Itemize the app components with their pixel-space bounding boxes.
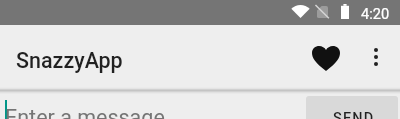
staticText: SEND bbox=[333, 110, 375, 119]
staticText: 4:20 bbox=[361, 5, 390, 22]
button[interactable]: Favorite bbox=[302, 36, 350, 80]
button[interactable]: SEND bbox=[306, 96, 398, 119]
staticText: SnazzyApp bbox=[16, 48, 123, 73]
button[interactable]: More options bbox=[354, 36, 398, 80]
staticText: Enter a message bbox=[5, 105, 165, 119]
